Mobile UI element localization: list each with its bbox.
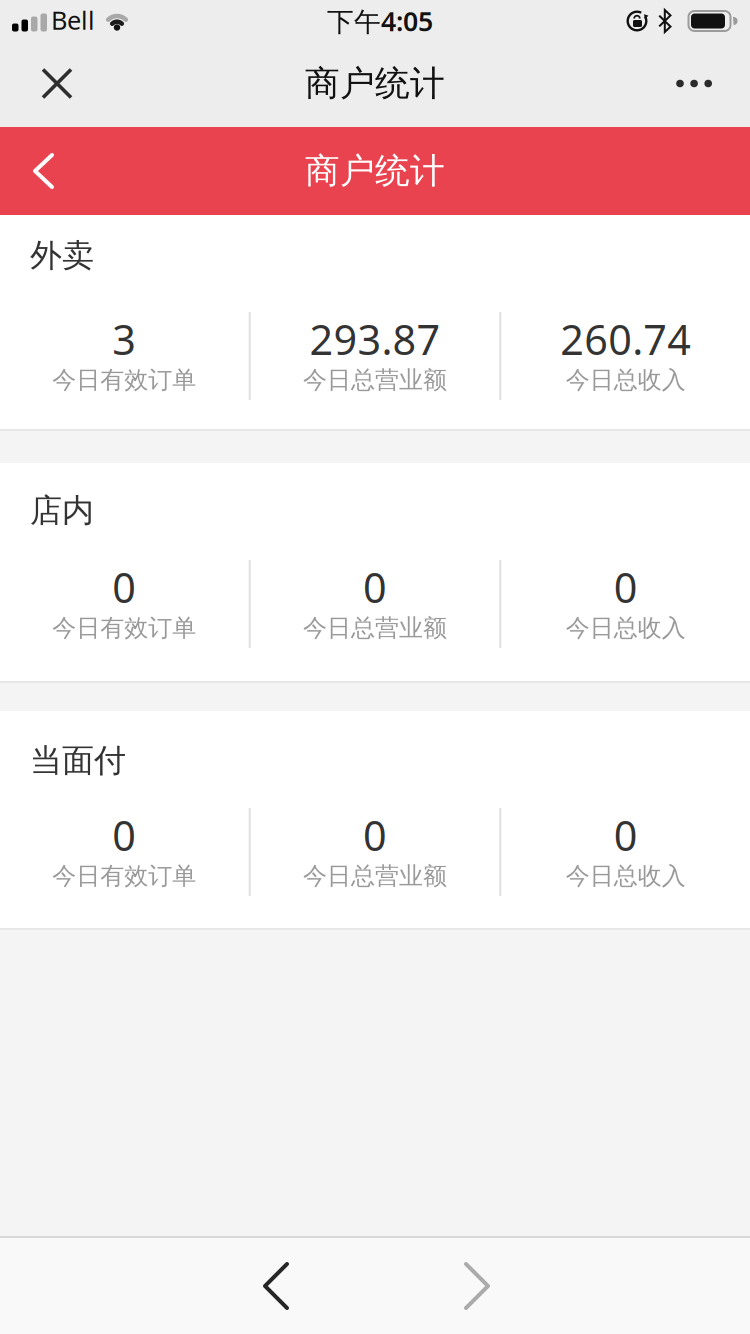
staticText: 0 [112, 807, 136, 862]
staticText: 商户统计 [305, 62, 445, 105]
staticText: 今日总收入 [566, 613, 686, 643]
staticText: 外卖 [30, 236, 94, 275]
button[interactable]: Close [0, 40, 91, 127]
button[interactable]: Forward [423, 1238, 525, 1334]
staticText: 今日总收入 [566, 365, 686, 395]
staticText: 今日有效订单 [52, 613, 196, 643]
staticText: 293.87 [309, 311, 440, 366]
staticText: 当面付 [30, 741, 126, 780]
staticText: 0 [112, 559, 136, 614]
staticText: 0 [363, 807, 387, 862]
staticText: 店内 [30, 491, 94, 530]
staticText: 今日有效订单 [52, 365, 196, 395]
button[interactable]: More [652, 40, 750, 127]
staticText: 260.74 [560, 311, 691, 366]
staticText: 今日总营业额 [303, 613, 447, 643]
staticText: Bell [51, 3, 95, 37]
staticText: 0 [614, 807, 638, 862]
staticText: 今日总营业额 [303, 365, 447, 395]
staticText: 3 [112, 311, 136, 366]
staticText: 今日总收入 [566, 861, 686, 891]
staticText: 0 [614, 559, 638, 614]
staticText: 下午4:05 [327, 3, 433, 39]
button[interactable]: Back [0, 127, 76, 215]
staticText: 今日总营业额 [303, 861, 447, 891]
staticText: 0 [363, 559, 387, 614]
staticText: 今日有效订单 [52, 861, 196, 891]
button[interactable]: Back [225, 1238, 327, 1334]
staticText: 商户统计 [305, 150, 445, 192]
